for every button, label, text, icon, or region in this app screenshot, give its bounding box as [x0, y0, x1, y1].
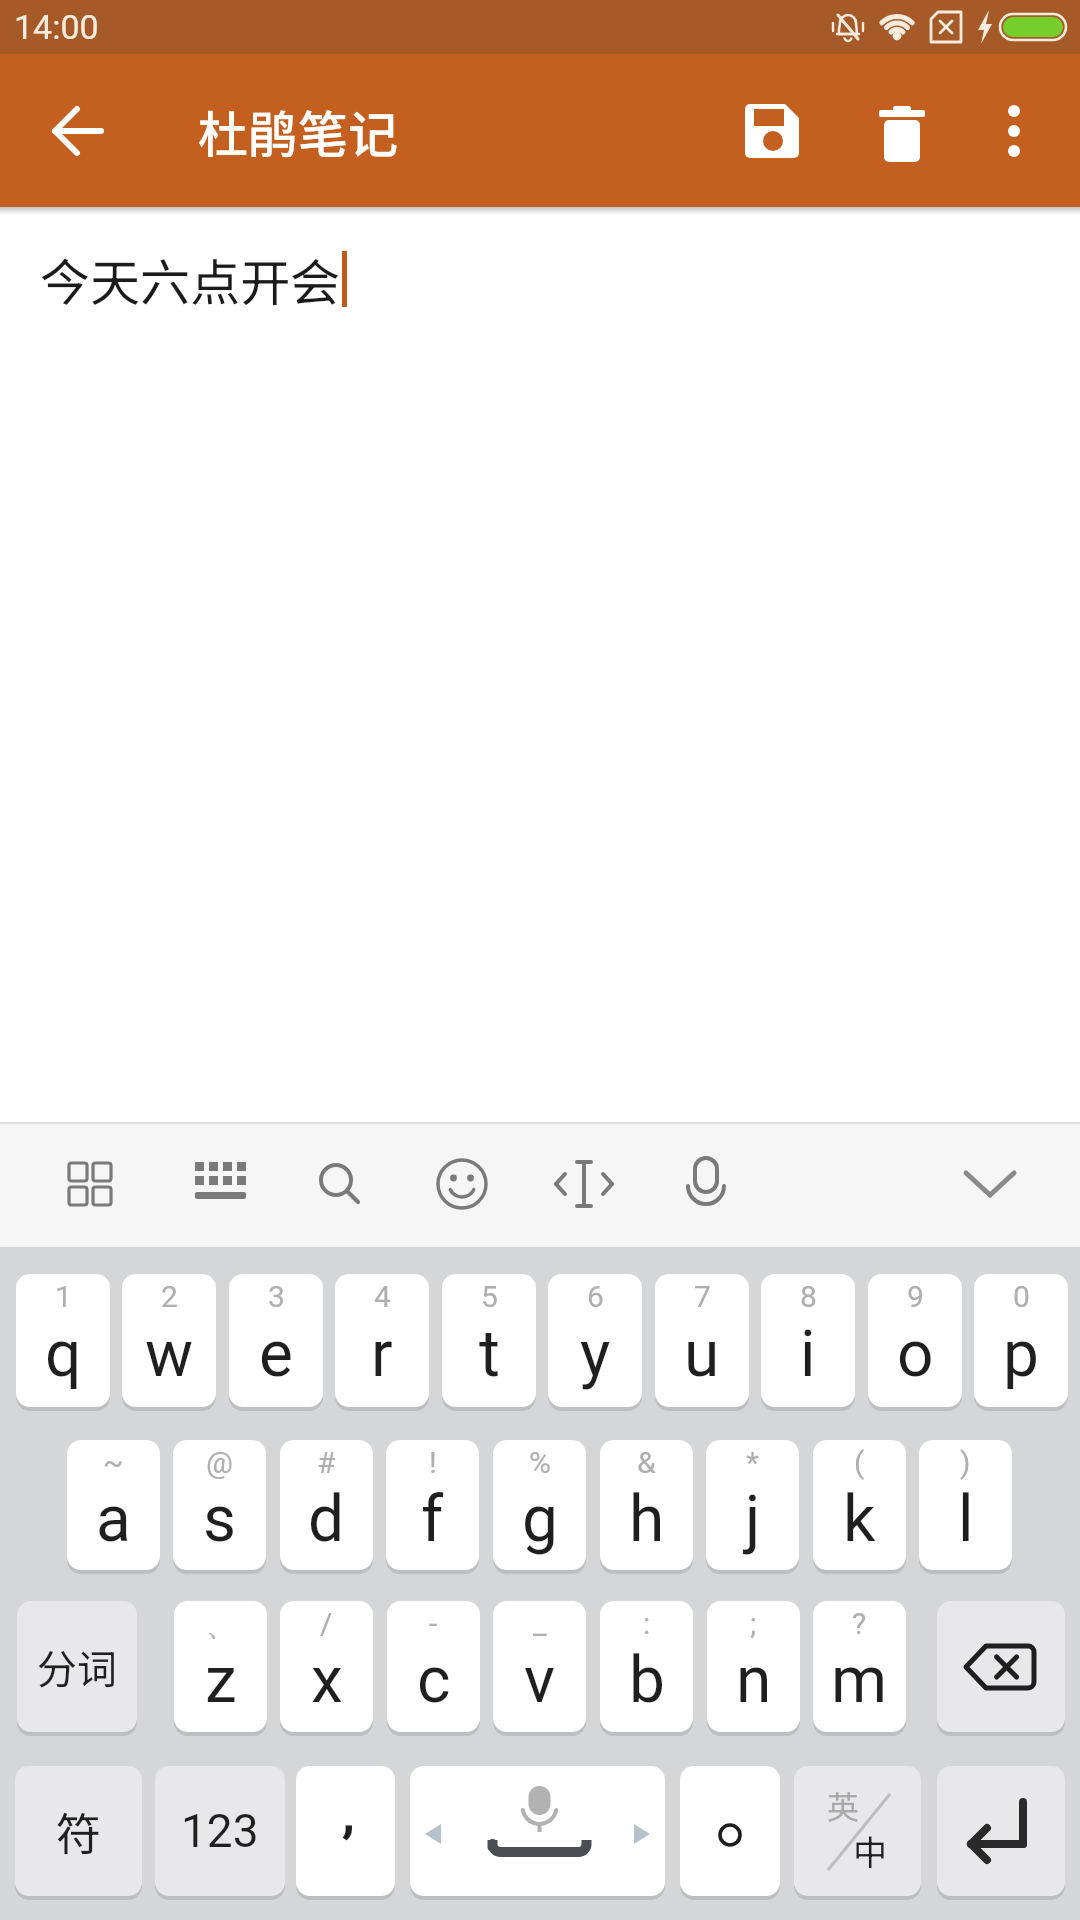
staticText: ? — [852, 1606, 867, 1641]
button[interactable]: 7 — [655, 1274, 749, 1407]
button[interactable] — [422, 1144, 502, 1224]
button[interactable]: / — [280, 1601, 373, 1732]
staticText: c — [417, 1643, 451, 1718]
button[interactable] — [410, 1766, 665, 1896]
staticText: 0 — [1013, 1279, 1030, 1314]
staticText: q — [45, 1317, 82, 1392]
button[interactable] — [866, 95, 938, 167]
staticText: 今天六点开会 — [40, 243, 340, 315]
button[interactable]: 2 — [122, 1274, 216, 1407]
staticText: 2 — [161, 1279, 178, 1314]
button[interactable]: 、 — [174, 1601, 267, 1732]
button[interactable]: ? — [813, 1601, 906, 1732]
staticText: - — [429, 1606, 438, 1641]
button[interactable] — [937, 1601, 1065, 1732]
button[interactable] — [40, 93, 116, 169]
staticText: f — [421, 1482, 444, 1557]
button[interactable]: 0 — [974, 1274, 1068, 1407]
button[interactable] — [937, 1766, 1065, 1896]
button[interactable] — [984, 101, 1044, 161]
staticText: 3 — [268, 1279, 285, 1314]
staticText: t — [479, 1317, 500, 1392]
button[interactable] — [734, 93, 810, 169]
staticText: g — [522, 1482, 558, 1557]
staticText: # — [317, 1445, 336, 1480]
button[interactable]: - — [387, 1601, 480, 1732]
staticText: 中 — [853, 1826, 887, 1875]
staticText: l — [958, 1482, 974, 1557]
staticText: 英 — [827, 1782, 860, 1828]
button[interactable]: ( — [813, 1440, 906, 1570]
button[interactable]: 3 — [229, 1274, 323, 1407]
staticText: u — [684, 1317, 720, 1392]
button[interactable] — [950, 1144, 1030, 1224]
staticText: w — [145, 1317, 194, 1392]
staticText: a — [96, 1482, 131, 1557]
button[interactable]: * — [706, 1440, 799, 1570]
staticText: 、 — [206, 1606, 236, 1644]
button[interactable]: : — [600, 1601, 693, 1732]
button[interactable]: 4 — [335, 1274, 429, 1407]
staticText: s — [203, 1482, 237, 1557]
staticText: 5 — [481, 1279, 498, 1314]
button[interactable]: ) — [919, 1440, 1012, 1570]
button[interactable]: 5 — [442, 1274, 536, 1407]
staticText: d — [308, 1482, 345, 1557]
button[interactable]: ; — [707, 1601, 800, 1732]
button[interactable]: 1 — [16, 1274, 110, 1407]
staticText: % — [529, 1445, 551, 1480]
button[interactable] — [666, 1144, 746, 1224]
staticText: r — [371, 1317, 393, 1392]
staticText: _ — [533, 1606, 547, 1641]
staticText: ! — [429, 1445, 437, 1480]
button[interactable]: , — [296, 1766, 395, 1896]
staticText: 4 — [374, 1279, 391, 1314]
staticText: o — [897, 1317, 934, 1392]
staticText: 1 — [55, 1279, 72, 1314]
staticText: j — [745, 1482, 761, 1557]
staticText: 9 — [907, 1279, 924, 1314]
staticText: : — [643, 1606, 651, 1641]
staticText: 分词 — [37, 1638, 117, 1696]
staticText: p — [1003, 1317, 1039, 1392]
staticText: i — [800, 1317, 816, 1392]
button[interactable]: 123 — [155, 1766, 285, 1896]
button[interactable]: # — [280, 1440, 373, 1570]
staticText: ~ — [103, 1445, 124, 1480]
staticText: ) — [960, 1445, 971, 1480]
button[interactable]: 英 — [794, 1766, 921, 1896]
staticText: & — [637, 1445, 656, 1480]
staticText: , — [343, 1782, 354, 1845]
staticText: b — [629, 1643, 665, 1718]
button[interactable]: _ — [493, 1601, 586, 1732]
button[interactable]: ! — [386, 1440, 479, 1570]
staticText: ; — [750, 1606, 757, 1641]
button[interactable] — [180, 1144, 260, 1224]
button[interactable] — [300, 1144, 380, 1224]
button[interactable] — [680, 1766, 780, 1896]
staticText: y — [580, 1317, 611, 1392]
button[interactable]: 符 — [15, 1766, 142, 1896]
button[interactable]: & — [600, 1440, 693, 1570]
staticText: 14:00 — [14, 7, 99, 47]
staticText: @ — [206, 1445, 233, 1480]
button[interactable]: % — [493, 1440, 586, 1570]
staticText: v — [524, 1643, 555, 1718]
button[interactable] — [50, 1144, 130, 1224]
staticText: h — [629, 1482, 665, 1557]
staticText: / — [320, 1606, 333, 1641]
button[interactable]: 9 — [868, 1274, 962, 1407]
staticText: 6 — [587, 1279, 604, 1314]
staticText: 123 — [181, 1804, 259, 1858]
staticText: m — [831, 1643, 888, 1718]
button[interactable]: 8 — [761, 1274, 855, 1407]
staticText: 符 — [56, 1799, 102, 1864]
staticText: * — [746, 1445, 759, 1480]
button[interactable]: ~ — [67, 1440, 160, 1570]
button[interactable]: 分词 — [17, 1601, 137, 1732]
button[interactable] — [544, 1144, 624, 1224]
staticText: 杜鹃笔记 — [198, 95, 398, 167]
staticText: e — [259, 1317, 293, 1392]
button[interactable]: @ — [173, 1440, 266, 1570]
button[interactable]: 6 — [548, 1274, 642, 1407]
